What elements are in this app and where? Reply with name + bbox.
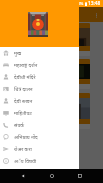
button[interactable]: More options [92, 11, 100, 19]
button[interactable]: महाराष्ट्र दर्शन [0, 59, 79, 71]
staticText: अॅप विषयी [14, 158, 37, 165]
staticText: 13:48 [88, 0, 101, 7]
button[interactable]: श्री देवी मंदिर दर्शन [14, 23, 90, 56]
button[interactable]: मुख [0, 47, 79, 59]
button[interactable]: संपर्क [0, 119, 79, 131]
staticText: देवी स्तवन [14, 98, 33, 105]
staticText: संपर्क [14, 122, 25, 129]
staticText: श्री देवी मंदिर दर्शन [14, 124, 37, 129]
staticText: देवीची मंदिरे [14, 74, 36, 81]
staticText: शेअर करा [14, 146, 32, 153]
staticText: 13% [75, 1, 84, 7]
staticText: माहितीपट [14, 110, 32, 117]
button[interactable]: शेअर करा [0, 143, 79, 155]
button[interactable]: माहितीपट [0, 107, 79, 119]
button[interactable]: अभिप्राय नोंद [0, 131, 79, 143]
staticText: अभिप्राय नोंद [14, 134, 38, 141]
staticText: श्री देवी मंदिर दर्शन [14, 51, 37, 56]
staticText: महाराष्ट्र दर्शन [14, 62, 38, 69]
staticText: चित्र दालन [14, 86, 33, 93]
button[interactable]: अॅप विषयी [0, 155, 79, 167]
button[interactable]: श्री देवी मंदिर दर्शन [14, 59, 90, 89]
button[interactable]: Profile picture [28, 12, 48, 37]
staticText: मुख [14, 50, 22, 57]
button[interactable]: देवीची मंदिरे [0, 71, 79, 83]
button[interactable]: चित्र दालन [0, 83, 79, 95]
button[interactable]: Back [17, 170, 29, 182]
staticText: श्री देवी मंदिर दर्शन [14, 84, 37, 89]
button[interactable]: Home [46, 170, 58, 182]
button[interactable]: Recent apps [74, 170, 86, 182]
button[interactable]: श्री देवी मंदिर दर्शन [14, 93, 90, 129]
button[interactable]: देवी स्तवन [0, 95, 79, 107]
